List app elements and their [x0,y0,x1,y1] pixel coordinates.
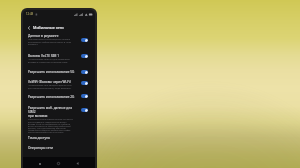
staticText: Разрешить использование второй SIM-карты… [28,118,73,133]
staticText: Точка доступа [28,136,50,140]
button[interactable]: Toggle [81,54,88,58]
button[interactable]: Recents [31,157,49,168]
button[interactable]: Toggle [81,70,88,74]
button[interactable]: Toggle [81,94,88,98]
button[interactable] [23,52,95,59]
button[interactable] [23,93,95,101]
button[interactable]: Toggle [81,38,88,42]
staticText: Вызовы VoLTE SIM 1 [28,54,60,58]
staticText: Разрешить использование 5G [28,70,75,74]
staticText: Использование сети передачи данных Wi-Fi… [28,84,72,89]
button[interactable]: Back [68,157,87,168]
button[interactable]: Toggle [81,108,88,112]
staticText: VoWiFi (Вызовы через Wi-Fi) [28,80,71,84]
button[interactable] [23,103,95,110]
button[interactable] [23,68,95,76]
staticText: Мобильные сети [33,25,64,30]
staticText: Разрешить моб. данные для SIM2 при вызов… [28,106,80,118]
button[interactable]: Toggle [81,81,88,85]
staticText: Операторы сети [28,146,54,150]
staticText: При включении этой функции вы сможете ис… [28,38,71,45]
staticText: Использование сетей 4G для совершения вы… [28,58,70,63]
button[interactable]: Home [49,157,68,168]
staticText: Данные в роуминге [28,34,59,38]
button[interactable]: Back [25,24,32,31]
staticText: Разрешить использование 2G [28,95,75,99]
button[interactable] [23,143,95,151]
button[interactable] [23,77,95,84]
staticText: 12:48 [26,12,34,16]
button[interactable] [23,32,95,39]
button[interactable] [23,133,95,141]
